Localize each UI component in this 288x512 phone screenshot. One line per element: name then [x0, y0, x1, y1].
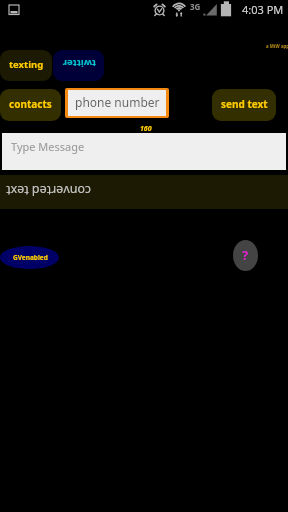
staticText: send text	[221, 97, 268, 111]
button[interactable]: Help	[232, 239, 259, 272]
button[interactable]: phone number	[65, 88, 169, 118]
staticText: 4:03 PM	[242, 2, 284, 17]
button[interactable]: texting	[0, 50, 52, 81]
button[interactable]: GVenabled	[0, 245, 60, 270]
button[interactable]: twitter	[53, 50, 104, 81]
staticText: converted text	[6, 182, 91, 199]
button[interactable]: send text	[212, 89, 276, 121]
staticText: 3G	[190, 1, 201, 12]
staticText: contacts	[9, 97, 52, 111]
staticText: 160	[140, 124, 152, 134]
button[interactable]: Type Message	[2, 133, 286, 170]
staticText: a MtW app	[266, 44, 288, 50]
button[interactable]: contacts	[0, 89, 61, 121]
staticText: GVenabled	[13, 253, 48, 262]
staticText: twitter	[62, 57, 96, 70]
staticText: phone number	[75, 94, 160, 110]
staticText: texting	[9, 58, 44, 71]
staticText: ?	[242, 246, 249, 264]
staticText: Type Message	[11, 139, 85, 154]
